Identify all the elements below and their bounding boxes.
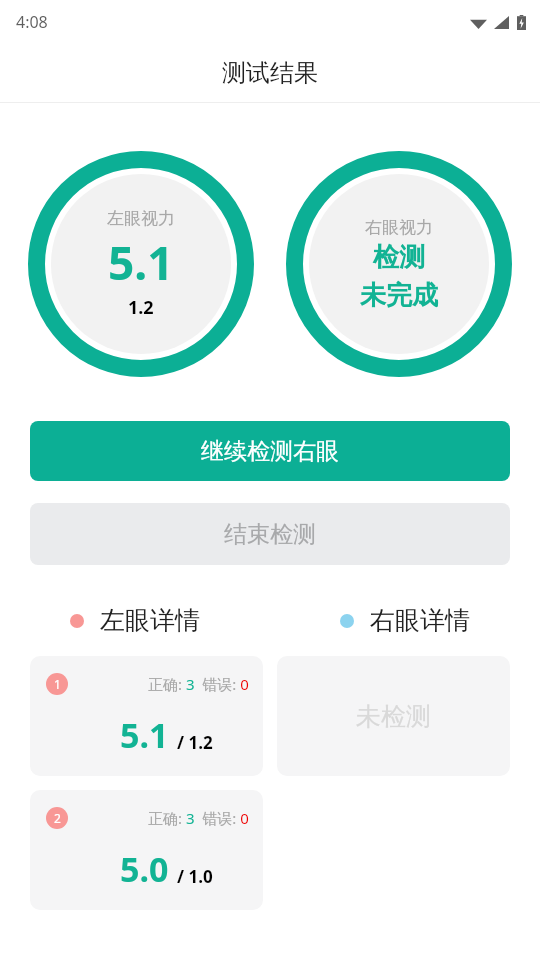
staticText: 右眼详情 (370, 605, 470, 636)
button[interactable]: 继续检测右眼 (30, 421, 510, 481)
button[interactable]: 右眼详情 (270, 605, 540, 636)
staticText: 继续检测右眼 (201, 437, 339, 466)
staticText: 左眼详情 (100, 605, 200, 636)
staticText: 4:08 (16, 11, 48, 33)
staticText: / 1.2 (177, 731, 213, 754)
staticText: / 1.0 (177, 865, 213, 888)
staticText: 左眼视力 (107, 208, 175, 229)
staticText: 1.2 (128, 295, 154, 320)
button[interactable]: 结束检测 (30, 503, 510, 565)
staticText: 5.1 (120, 712, 169, 758)
staticText: 结束检测 (224, 520, 316, 549)
staticText: 5.1 (108, 231, 174, 294)
staticText: 未完成 (360, 279, 438, 312)
staticText: 未检测 (356, 701, 431, 732)
staticText: 检测 (373, 241, 425, 274)
button[interactable]: 右眼视力 (286, 151, 512, 377)
button[interactable]: 左眼视力 (28, 151, 254, 377)
button[interactable]: 1 (30, 656, 263, 776)
staticText: 5.0 (120, 846, 169, 892)
button[interactable]: 未检测 (277, 656, 510, 776)
button[interactable]: 2 (30, 790, 263, 910)
staticText: 1 (54, 676, 61, 692)
staticText: 正确: 3 错误: 0 (148, 674, 249, 694)
staticText: 右眼视力 (365, 217, 433, 238)
staticText: 2 (54, 810, 61, 826)
staticText: 正确: 3 错误: 0 (148, 808, 249, 828)
button[interactable]: 左眼详情 (0, 605, 270, 636)
staticText: 测试结果 (222, 58, 318, 88)
